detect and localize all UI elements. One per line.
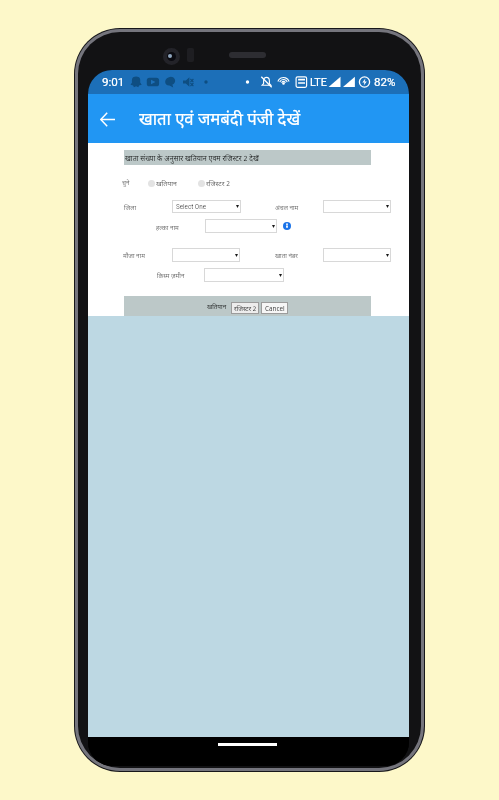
button[interactable]: Dropdown — [172, 248, 240, 262]
staticText: चुने — [122, 178, 130, 186]
button[interactable]: Dropdown — [323, 248, 391, 262]
button[interactable]: Dropdown — [205, 219, 277, 233]
staticText: खतियान — [156, 179, 177, 188]
staticText: रजिस्टर 2 — [234, 304, 257, 313]
staticText: रजिस्टर 2 — [206, 179, 230, 188]
staticText: LTE — [310, 76, 327, 89]
button[interactable]: रजिस्टर 2 — [198, 179, 230, 188]
staticText: खतियान — [207, 302, 227, 311]
button[interactable]: Back — [91, 104, 123, 134]
staticText: खाता संख्या के अनुसार खतियान एवम रजिस्टर… — [125, 153, 259, 163]
button[interactable]: Dropdown — [172, 200, 241, 213]
button[interactable]: खतियान — [148, 179, 177, 188]
button[interactable]: रजिस्टर 2 — [231, 302, 259, 314]
button[interactable]: Dropdown — [204, 268, 284, 282]
staticText: खाता एवं जमबंदी पंजी देखें — [139, 107, 301, 130]
staticText: किस्म ज़मीन — [157, 271, 185, 279]
staticText: अंचल नाम — [275, 203, 299, 211]
staticText: हल्का नाम — [156, 223, 179, 231]
button[interactable]: Dropdown — [323, 200, 391, 213]
button[interactable]: Information — [283, 222, 291, 230]
staticText: जिला — [124, 203, 136, 211]
staticText: मौजा नाम — [123, 251, 145, 259]
staticText: 82% — [374, 75, 396, 89]
staticText: Select One — [176, 203, 207, 210]
button[interactable]: Cancel — [261, 302, 288, 314]
staticText: खाता नंबर — [275, 251, 298, 259]
staticText: Cancel — [265, 304, 285, 313]
staticText: 9:01 — [102, 75, 125, 89]
